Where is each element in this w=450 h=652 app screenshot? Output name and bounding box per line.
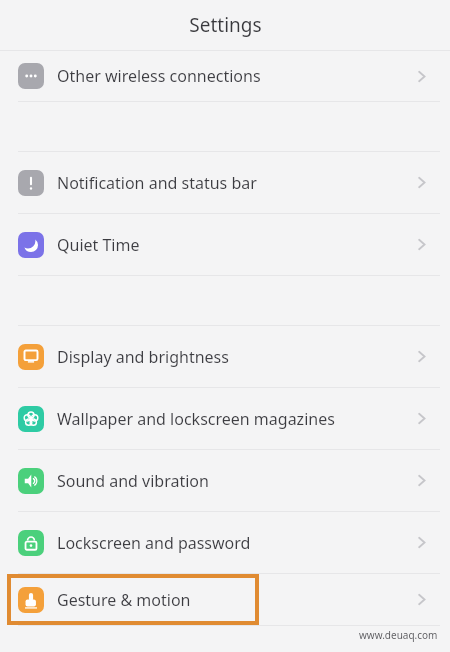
staticText: Other wireless connections [57, 65, 413, 87]
staticText: Display and brightness [57, 346, 413, 368]
other: Open Other wireless connections [413, 68, 430, 85]
staticText: Gesture & motion [57, 589, 413, 611]
staticText: Settings [189, 12, 262, 38]
button[interactable]: Gesture & motion [0, 574, 450, 625]
button[interactable]: Lockscreen and password [0, 512, 450, 573]
staticText: Lockscreen and password [57, 532, 413, 554]
button[interactable]: Display and brightness [0, 326, 450, 387]
staticText: Sound and vibration [57, 470, 413, 492]
staticText: Quiet Time [57, 234, 413, 256]
other: Open Notification and status bar [413, 174, 430, 191]
other: Open Gesture & motion [413, 591, 430, 608]
other: Open Wallpaper and lockscreen magazines [413, 410, 430, 427]
button[interactable]: Wallpaper and lockscreen magazines [0, 388, 450, 449]
other: Open Sound and vibration [413, 472, 430, 489]
button[interactable]: Notification and status bar [0, 152, 450, 213]
staticText: Notification and status bar [57, 172, 413, 194]
other: Open Display and brightness [413, 348, 430, 365]
other: Open Lockscreen and password [413, 534, 430, 551]
staticText: www.deuaq.com [359, 628, 438, 642]
button[interactable]: Quiet Time [0, 214, 450, 275]
staticText: Wallpaper and lockscreen magazines [57, 408, 413, 430]
button[interactable]: Sound and vibration [0, 450, 450, 511]
button[interactable]: Other wireless connections [0, 51, 450, 101]
other: Open Quiet Time [413, 236, 430, 253]
